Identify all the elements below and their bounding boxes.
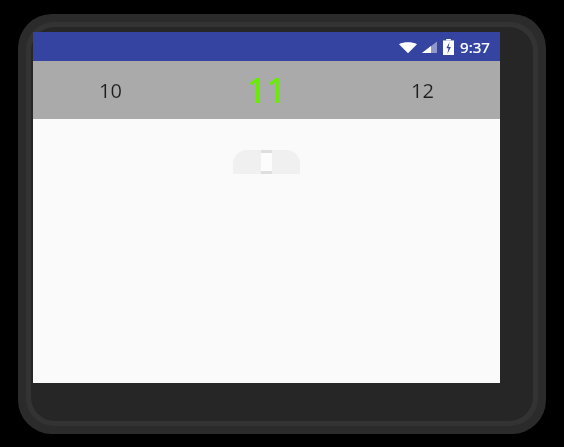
other: Mobile signal — [422, 40, 437, 54]
other: Wi-Fi signal — [399, 40, 417, 54]
button[interactable]: Widget — [233, 150, 300, 174]
other: Battery charging — [443, 39, 454, 55]
button[interactable]: 10 — [33, 61, 188, 119]
staticText: 9:37 — [460, 37, 490, 57]
staticText: 10 — [99, 77, 122, 104]
button[interactable]: 12 — [344, 61, 500, 119]
staticText: 11 — [247, 67, 286, 113]
button[interactable]: 11 — [188, 61, 344, 119]
staticText: 12 — [411, 77, 434, 104]
